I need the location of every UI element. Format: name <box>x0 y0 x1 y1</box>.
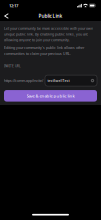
staticText: Let your community be more accessible wi… <box>4 26 93 42</box>
staticText: Editing your community's public link all… <box>4 45 84 56</box>
staticText: INVITE URL <box>4 64 21 68</box>
button[interactable]: Back <box>1 11 11 21</box>
staticText: 12:17 <box>9 3 18 8</box>
staticText: Public Link <box>38 13 62 19</box>
button[interactable]: Save & enable public link <box>4 90 97 102</box>
button[interactable]: Clear text <box>90 76 95 85</box>
staticText: https://comm.app/invite/ <box>4 78 43 83</box>
staticText: testSwellTest <box>47 78 69 83</box>
staticText: Save & enable public link <box>26 93 74 99</box>
